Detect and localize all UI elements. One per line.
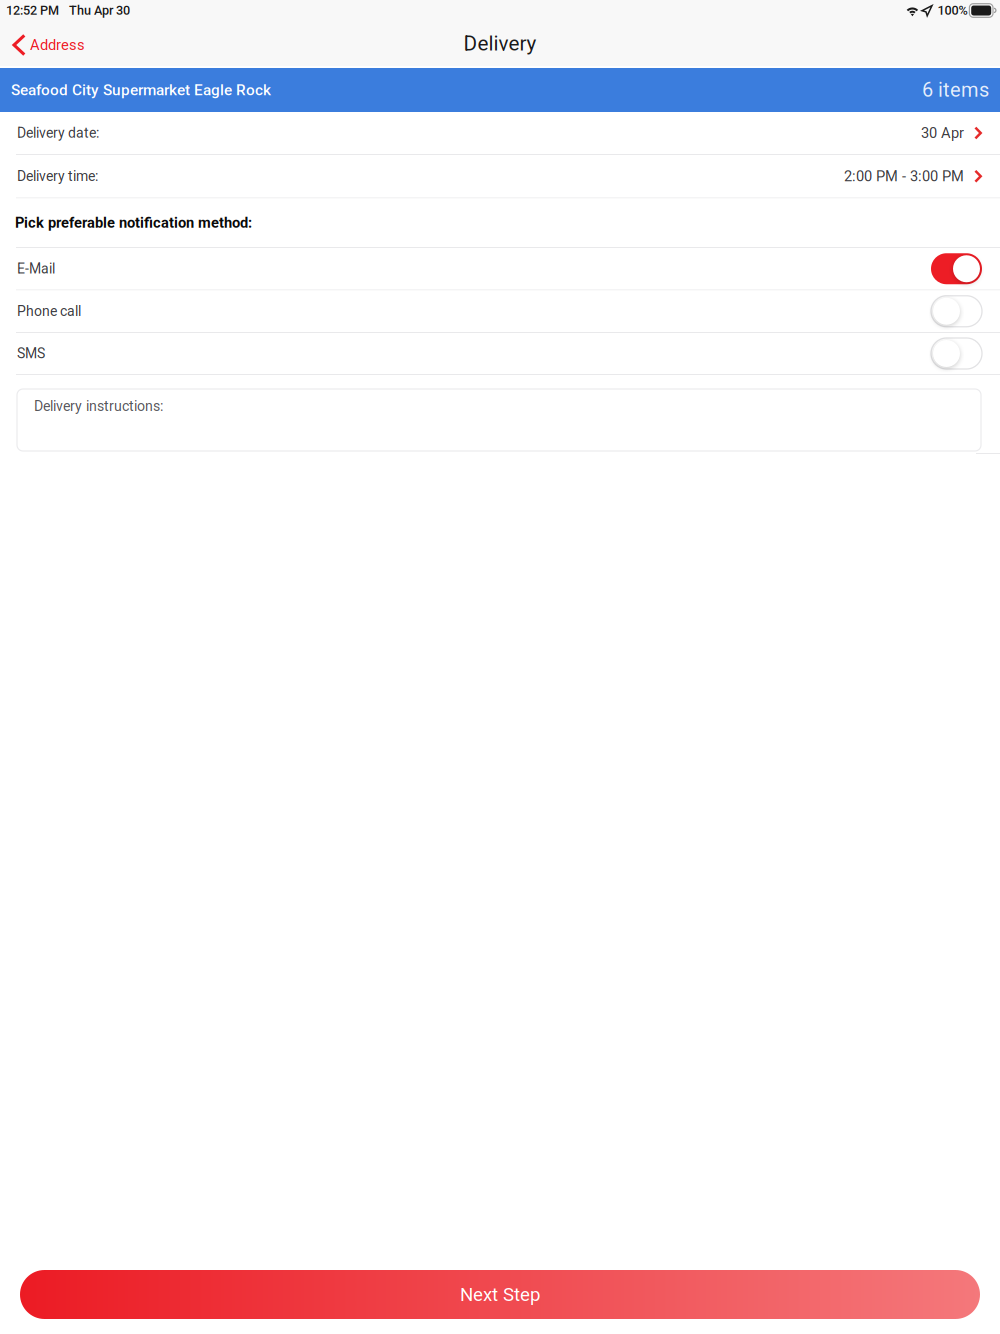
- staticText: Next Step: [460, 1284, 540, 1305]
- staticText: Seafood City Supermarket Eagle Rock: [11, 81, 271, 99]
- staticText: Address: [30, 36, 85, 54]
- button[interactable]: Phone call: [0, 290, 1000, 333]
- staticText: Delivery instructions:: [34, 398, 163, 415]
- button[interactable]: Delivery time:: [0, 155, 1000, 198]
- staticText: 30 Apr: [921, 124, 964, 142]
- staticText: Delivery date:: [17, 125, 99, 141]
- staticText: 2:00 PM - 3:00 PM: [844, 168, 964, 185]
- button[interactable]: SMS: [0, 333, 1000, 375]
- staticText: 12:52 PM: [6, 3, 59, 18]
- staticText: Pick preferable notification method:: [15, 214, 252, 231]
- staticText: Delivery: [463, 31, 536, 56]
- staticText: E-Mail: [17, 260, 55, 277]
- staticText: 6 items: [922, 78, 989, 102]
- button[interactable]: Address: [0, 22, 95, 66]
- button[interactable]: E-Mail: [0, 248, 1000, 290]
- button[interactable]: Next Step: [20, 1270, 980, 1319]
- staticText: 100%: [937, 3, 967, 18]
- button[interactable]: Delivery date:: [0, 112, 1000, 155]
- staticText: SMS: [17, 345, 45, 362]
- staticText: Phone call: [17, 303, 81, 319]
- staticText: Delivery time:: [17, 168, 98, 184]
- staticText: Thu Apr 30: [69, 3, 130, 18]
